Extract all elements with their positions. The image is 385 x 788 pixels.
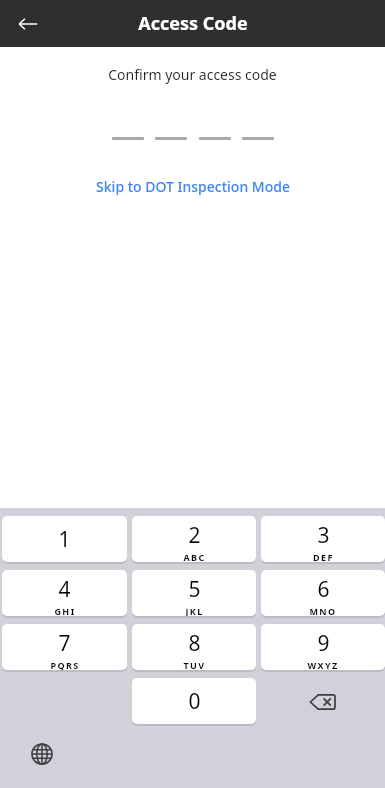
button[interactable]: 8: [132, 624, 256, 670]
button[interactable]: Change keyboard language: [22, 734, 62, 774]
button[interactable]: Backspace: [261, 678, 385, 725]
button[interactable]: 1: [2, 516, 127, 562]
staticText: PQRS: [50, 659, 80, 670]
button[interactable]: 3: [261, 516, 385, 562]
button[interactable]: Back: [8, 4, 48, 44]
button[interactable]: 4: [2, 570, 127, 616]
staticText: DEF: [313, 551, 334, 562]
staticText: ABC: [183, 551, 206, 562]
staticText: 3: [317, 521, 330, 550]
staticText: 8: [188, 629, 201, 658]
staticText: 6: [317, 575, 330, 604]
staticText: Skip to DOT Inspection Mode: [96, 177, 290, 196]
button[interactable]: 9: [261, 624, 385, 670]
button[interactable]: 6: [261, 570, 385, 616]
button[interactable]: 7: [2, 624, 127, 670]
button[interactable]: 2: [132, 516, 256, 562]
button[interactable]: 0: [132, 678, 256, 724]
staticText: 5: [188, 575, 201, 604]
staticText: 0: [188, 687, 201, 716]
staticText: TUV: [183, 659, 206, 670]
staticText: Confirm your access code: [108, 65, 277, 84]
button[interactable]: 5: [132, 570, 256, 616]
staticText: Access Code: [138, 11, 248, 36]
staticText: WXYZ: [307, 659, 339, 670]
staticText: JKL: [185, 605, 204, 616]
staticText: 4: [58, 575, 71, 604]
staticText: 1: [58, 525, 71, 554]
staticText: 2: [188, 521, 201, 550]
staticText: 9: [317, 629, 330, 658]
staticText: GHI: [54, 605, 76, 616]
staticText: MNO: [309, 605, 337, 616]
button[interactable]: Skip to DOT Inspection Mode: [88, 173, 298, 200]
staticText: 7: [58, 629, 71, 658]
